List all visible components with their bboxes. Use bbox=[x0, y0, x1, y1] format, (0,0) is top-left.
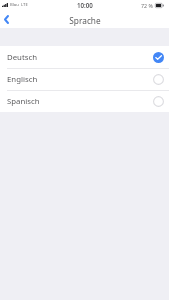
staticText: Sprache bbox=[69, 15, 101, 26]
staticText: Spanisch bbox=[7, 96, 40, 107]
staticText: 72 % bbox=[141, 2, 153, 9]
button[interactable]: Zurück bbox=[0, 12, 13, 26]
staticText: Deutsch bbox=[7, 52, 38, 63]
staticText: LTE bbox=[21, 2, 28, 8]
staticText: 10:00 bbox=[77, 1, 93, 9]
staticText: Englisch bbox=[7, 74, 38, 85]
button[interactable]: Deutsch bbox=[0, 46, 169, 68]
button[interactable]: Spanisch bbox=[0, 90, 169, 112]
button[interactable]: Englisch bbox=[0, 68, 169, 90]
staticText: Blau bbox=[10, 2, 19, 8]
